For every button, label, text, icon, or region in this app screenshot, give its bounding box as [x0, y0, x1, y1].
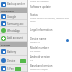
staticText: WhatsApp [7, 29, 20, 33]
staticText: Device protect [7, 59, 19, 63]
button[interactable]: Battery [0, 47, 27, 56]
staticText: 7.0 [30, 59, 34, 62]
button[interactable]: Device protect [0, 56, 27, 65]
staticText: Backup and re [7, 2, 26, 6]
button[interactable]: Samsung acc [0, 20, 27, 27]
staticText: Legal information [30, 28, 53, 32]
staticText: Google [7, 15, 17, 19]
button[interactable]: Model number [28, 45, 72, 54]
button[interactable]: S Pen [0, 65, 27, 72]
button[interactable]: Device name [28, 35, 72, 45]
button[interactable]: WhatsApp [0, 27, 27, 34]
button[interactable]: Backup and re [0, 0, 27, 8]
button[interactable]: Status [28, 11, 72, 25]
staticText: Check version of battery, network and ot… [30, 17, 69, 23]
button[interactable]: Baseband version [28, 63, 72, 72]
staticText: Battery [7, 50, 17, 54]
button[interactable]: Google [0, 13, 27, 20]
staticText: Device name [30, 37, 47, 41]
button[interactable]: Software update [28, 3, 72, 11]
staticText: Galaxy S7 [30, 41, 40, 44]
staticText: G930FXXU1DQBA [30, 68, 49, 71]
staticText: SM-G930F [30, 50, 41, 53]
staticText: Baseband version [30, 64, 53, 68]
button[interactable]: Legal information [28, 25, 72, 35]
staticText: SYSTEM [1, 43, 11, 46]
staticText: Add account [7, 36, 23, 40]
staticText: ACCOUNTS [1, 9, 14, 12]
button[interactable]: Add account [0, 34, 27, 42]
staticText: Android version [30, 55, 51, 59]
staticText: Software update [30, 5, 51, 9]
staticText: Model number [30, 46, 49, 50]
staticText: Samsung acc [7, 22, 24, 26]
staticText: S Pen [7, 67, 14, 71]
staticText: Check for updates [30, 0, 49, 3]
button[interactable]: Android version [28, 54, 72, 63]
staticText: Status [30, 13, 38, 17]
